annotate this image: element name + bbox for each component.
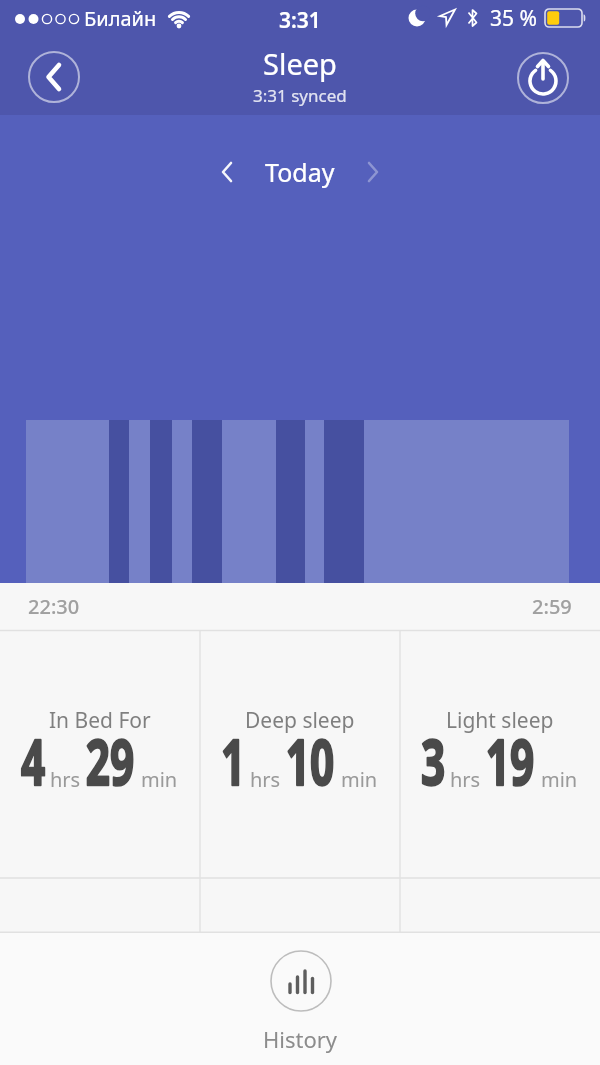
- staticText: 4: [0, 718, 77, 803]
- staticText: 3: [389, 718, 477, 803]
- staticText: 35 %: [490, 4, 537, 33]
- staticText: 2:59: [532, 593, 572, 620]
- staticText: Билайн: [84, 5, 157, 32]
- staticText: Light sleep: [446, 706, 554, 735]
- staticText: 3: [389, 718, 477, 803]
- staticText: min: [541, 766, 578, 793]
- button[interactable]: [28, 51, 80, 103]
- staticText: 19: [466, 718, 554, 803]
- button[interactable]: Deep sleep: [200, 630, 400, 878]
- button[interactable]: Today: [219, 155, 381, 189]
- button[interactable]: [517, 52, 569, 104]
- staticText: History: [263, 1024, 338, 1054]
- staticText: 1: [189, 718, 277, 803]
- staticText: hrs: [450, 766, 481, 793]
- staticText: Deep sleep: [245, 706, 355, 735]
- staticText: 22:30: [28, 593, 80, 620]
- staticText: min: [141, 766, 178, 793]
- staticText: 10: [266, 718, 354, 803]
- staticText: 29: [66, 718, 154, 803]
- button[interactable]: History: [263, 950, 338, 1054]
- button[interactable]: Light sleep: [400, 630, 600, 878]
- staticText: 4: [0, 718, 77, 803]
- staticText: Sleep: [263, 44, 337, 83]
- staticText: 1: [189, 718, 277, 803]
- button[interactable]: In Bed For: [0, 630, 200, 878]
- staticText: min: [341, 766, 378, 793]
- staticText: In Bed For: [49, 706, 151, 735]
- staticText: 3:31: [279, 6, 321, 35]
- staticText: Today: [265, 155, 335, 189]
- staticText: 3:31 synced: [253, 84, 347, 107]
- staticText: 10: [266, 718, 354, 803]
- staticText: 29: [66, 718, 154, 803]
- staticText: hrs: [250, 766, 281, 793]
- staticText: hrs: [50, 766, 81, 793]
- staticText: 19: [466, 718, 554, 803]
